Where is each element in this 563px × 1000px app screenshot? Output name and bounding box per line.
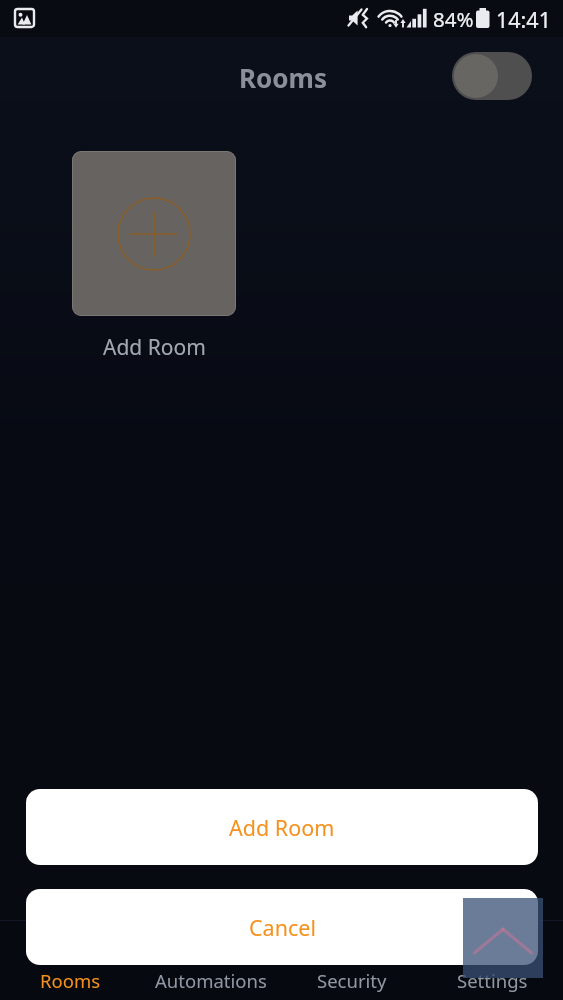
staticText: Add Room [103, 333, 206, 362]
button[interactable]: Add Room [72, 151, 236, 316]
staticText: Cancel [249, 913, 316, 942]
button[interactable]: Toggle all rooms [452, 52, 532, 100]
staticText: 84% [433, 5, 474, 33]
staticText: Security [317, 968, 387, 993]
button[interactable]: Cancel [26, 889, 538, 965]
button[interactable]: Settings [422, 921, 563, 1000]
staticText: 14:41 [496, 5, 551, 34]
button[interactable]: Screen recorder overlay [463, 898, 543, 978]
staticText: Settings [457, 968, 528, 993]
button[interactable]: Automations [140, 921, 281, 1000]
button[interactable]: Rooms [0, 921, 140, 1000]
button[interactable]: Add Room [26, 789, 538, 865]
button[interactable]: Security [281, 921, 422, 1000]
staticText: Add Room [229, 813, 335, 842]
staticText: Automations [155, 968, 267, 993]
staticText: Rooms [239, 60, 327, 95]
staticText: Rooms [40, 968, 101, 993]
